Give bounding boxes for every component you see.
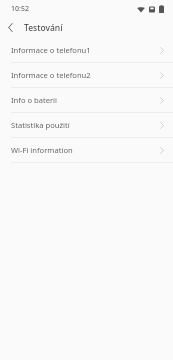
- staticText: Informace o telefonu2: [11, 70, 160, 80]
- staticText: Statistika použití: [11, 120, 160, 130]
- button[interactable]: Info o baterii: [0, 88, 173, 112]
- button[interactable]: Statistika použití: [0, 113, 173, 137]
- button[interactable]: Informace o telefonu1: [0, 38, 173, 62]
- staticText: 10:52: [11, 4, 29, 14]
- button[interactable]: Back: [0, 17, 20, 38]
- button[interactable]: Informace o telefonu2: [0, 63, 173, 87]
- staticText: Info o baterii: [11, 95, 160, 105]
- staticText: Informace o telefonu1: [11, 45, 160, 55]
- button[interactable]: Wi-Fi information: [0, 138, 173, 162]
- staticText: Testování: [24, 22, 63, 34]
- staticText: Wi-Fi information: [11, 145, 160, 155]
